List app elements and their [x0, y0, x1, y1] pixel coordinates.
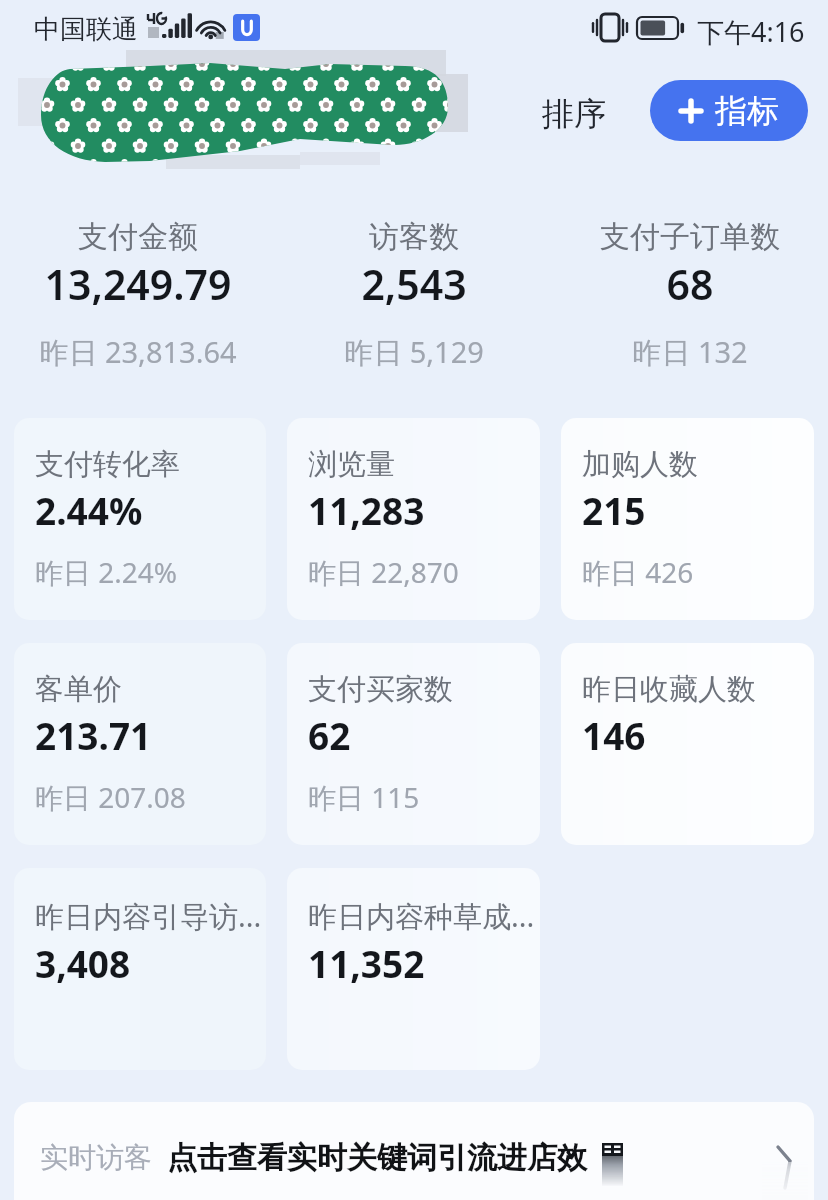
staticText: 146: [582, 710, 646, 760]
staticText: 昨日内容种草成...: [308, 896, 535, 936]
staticText: 点击查看实时关键词引流进店效: [167, 1139, 587, 1177]
staticText: 13,249.79: [0, 256, 276, 312]
button[interactable]: 昨日收藏人数: [561, 643, 814, 845]
button[interactable]: 浏览量: [287, 418, 540, 620]
button[interactable]: 昨日内容种草成...: [287, 868, 540, 1070]
staticText: 昨日 5,129: [276, 332, 552, 372]
staticText: 昨日 132: [552, 332, 828, 372]
staticText: 下午4:16: [697, 13, 805, 50]
staticText: 11,352: [308, 938, 425, 988]
staticText: 浏览量: [308, 446, 395, 483]
staticText: 215: [582, 485, 646, 535]
button[interactable]: 访客数: [276, 218, 552, 372]
staticText: 3,408: [35, 938, 131, 988]
staticText: 中国联通: [34, 13, 138, 46]
button[interactable]: 加购人数: [561, 418, 814, 620]
staticText: 指标: [715, 91, 779, 131]
staticText: 2,543: [276, 256, 552, 312]
staticText: 支付转化率: [35, 446, 180, 483]
button[interactable]: 支付子订单数: [552, 218, 828, 372]
staticText: 213.71: [35, 710, 152, 760]
staticText: 昨日 207.08: [35, 778, 186, 816]
staticText: 昨日 22,870: [308, 553, 459, 591]
button[interactable]: 支付买家数: [287, 643, 540, 845]
staticText: 加购人数: [582, 446, 698, 483]
button[interactable]: 排序: [532, 86, 616, 142]
staticText: 昨日 23,813.64: [0, 332, 276, 372]
staticText: 昨日 426: [582, 553, 694, 591]
staticText: 62: [308, 710, 351, 760]
staticText: 支付买家数: [308, 671, 453, 708]
button[interactable]: 昨日内容引导访...: [14, 868, 266, 1070]
staticText: 11,283: [308, 485, 425, 535]
staticText: 昨日收藏人数: [582, 671, 756, 708]
button[interactable]: 客单价: [14, 643, 266, 845]
staticText: 支付子订单数: [552, 218, 828, 256]
staticText: 访客数: [276, 218, 552, 256]
staticText: 支付金额: [0, 218, 276, 256]
staticText: 昨日 115: [308, 778, 420, 816]
staticText: 68: [552, 256, 828, 312]
staticText: 2.44%: [35, 485, 143, 535]
staticText: 客单价: [35, 671, 122, 708]
staticText: 排序: [542, 94, 606, 134]
button[interactable]: 支付转化率: [14, 418, 266, 620]
other: 查看详情: [762, 1144, 808, 1200]
button[interactable]: 指标: [650, 80, 808, 141]
staticText: 昨日 2.24%: [35, 553, 178, 591]
staticText: 昨日内容引导访...: [35, 896, 262, 936]
button[interactable]: 实时访客: [14, 1102, 814, 1200]
staticText: 实时访客: [40, 1140, 152, 1175]
button[interactable]: 支付金额: [0, 218, 276, 372]
